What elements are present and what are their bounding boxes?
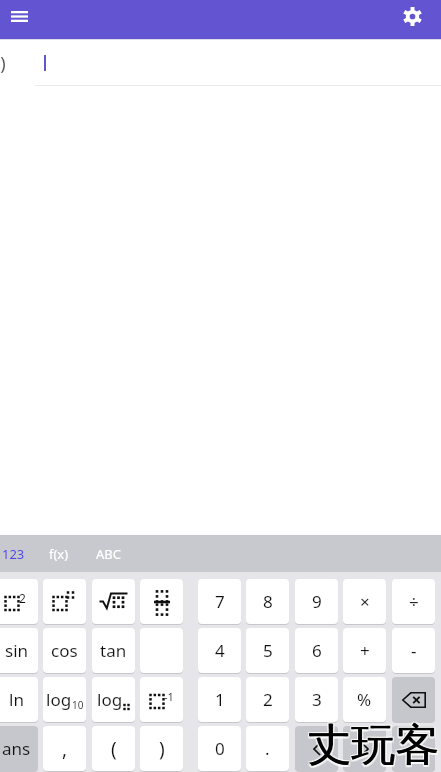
staticText: 1) xyxy=(0,51,6,76)
button[interactable]: ) xyxy=(140,726,183,771)
button[interactable]: Settings xyxy=(396,0,429,33)
button[interactable]: cos xyxy=(43,628,86,673)
staticText: - xyxy=(411,639,417,662)
staticText: 1 xyxy=(215,688,225,711)
button[interactable]: -1 xyxy=(140,677,183,722)
staticText: cos xyxy=(51,639,78,662)
staticText: f(x) xyxy=(49,545,69,563)
staticText: 5 xyxy=(263,639,273,662)
button[interactable]: - xyxy=(392,628,435,673)
staticText: ABC xyxy=(96,545,121,563)
staticText: 0 xyxy=(215,737,225,760)
staticText: 6 xyxy=(312,639,322,662)
staticText: = xyxy=(408,736,419,762)
button[interactable] xyxy=(43,579,86,624)
staticText: 丈玩客 xyxy=(306,717,438,772)
staticText: tan xyxy=(100,639,127,662)
button[interactable]: ÷ xyxy=(392,579,435,624)
button[interactable]: tan xyxy=(92,628,135,673)
button[interactable]: Menu xyxy=(3,0,36,33)
button[interactable]: 8 xyxy=(246,579,289,624)
staticText: 2 xyxy=(263,688,273,711)
button[interactable]: ABC xyxy=(95,537,122,571)
button[interactable]: ln xyxy=(0,677,38,722)
button[interactable]: , xyxy=(43,726,86,771)
button[interactable]: log xyxy=(92,677,135,722)
button[interactable]: + xyxy=(343,628,386,673)
staticText: 4 xyxy=(215,639,225,662)
button[interactable]: 3 xyxy=(295,677,338,722)
staticText: 9 xyxy=(312,590,322,613)
button[interactable]: 123 xyxy=(1,537,26,571)
staticText: 123 xyxy=(2,545,25,563)
staticText: log xyxy=(46,688,72,711)
staticText: 丈玩客 xyxy=(307,720,439,772)
button[interactable]: = xyxy=(392,726,435,771)
button[interactable] xyxy=(140,579,183,624)
button[interactable]: 0 xyxy=(198,726,241,771)
staticText: 丈玩客 xyxy=(306,718,438,772)
staticText: ( xyxy=(111,736,117,762)
button[interactable]: 6 xyxy=(295,628,338,673)
staticText: 丈玩客 xyxy=(306,720,438,772)
staticText: ans xyxy=(2,737,31,760)
button[interactable]: . xyxy=(246,726,289,771)
staticText: log xyxy=(97,688,123,711)
button[interactable] xyxy=(92,579,135,624)
button[interactable]: log xyxy=(43,677,86,722)
staticText: -1 xyxy=(164,689,174,704)
button[interactable]: × xyxy=(343,579,386,624)
staticText: ) xyxy=(159,736,165,762)
button[interactable]: Move left xyxy=(295,726,338,771)
staticText: , xyxy=(62,736,68,762)
staticText: 丈玩客 xyxy=(309,717,441,772)
other: Move right xyxy=(360,742,370,756)
staticText: . xyxy=(265,737,270,760)
staticText: ÷ xyxy=(409,590,419,613)
button[interactable]: 4 xyxy=(198,628,241,673)
staticText: 丈玩客 xyxy=(309,718,441,772)
button[interactable]: % xyxy=(343,677,386,722)
staticText: 丈玩客 xyxy=(307,718,439,772)
staticText: ln xyxy=(9,688,24,711)
button[interactable]: ( xyxy=(92,726,135,771)
button[interactable]: 5 xyxy=(246,628,289,673)
staticText: 丈玩客 xyxy=(308,718,440,772)
staticText: 丈玩客 xyxy=(307,717,439,772)
button[interactable]: 1 xyxy=(198,677,241,722)
staticText: + xyxy=(360,639,370,662)
button[interactable]: 2 xyxy=(246,677,289,722)
button[interactable]: Backspace xyxy=(392,677,435,722)
staticText: 2 xyxy=(19,590,26,606)
button[interactable]: ans xyxy=(0,726,38,771)
staticText: 7 xyxy=(215,590,225,613)
staticText: × xyxy=(360,590,370,613)
staticText: 3 xyxy=(312,688,322,711)
staticText: sin xyxy=(5,639,29,662)
other: Move left xyxy=(312,742,322,756)
other: Backspace xyxy=(402,692,426,708)
button[interactable]: 9 xyxy=(295,579,338,624)
button[interactable]: 7 xyxy=(198,579,241,624)
button[interactable]: Move right xyxy=(343,726,386,771)
button[interactable]: 2 xyxy=(0,579,38,624)
button[interactable]: f(x) xyxy=(48,537,70,571)
staticText: 丈玩客 xyxy=(307,718,439,772)
staticText: % xyxy=(357,688,372,711)
staticText: 8 xyxy=(263,590,273,613)
button[interactable]: sin xyxy=(0,628,38,673)
staticText: 丈玩客 xyxy=(309,720,441,772)
staticText: 10 xyxy=(72,698,84,712)
